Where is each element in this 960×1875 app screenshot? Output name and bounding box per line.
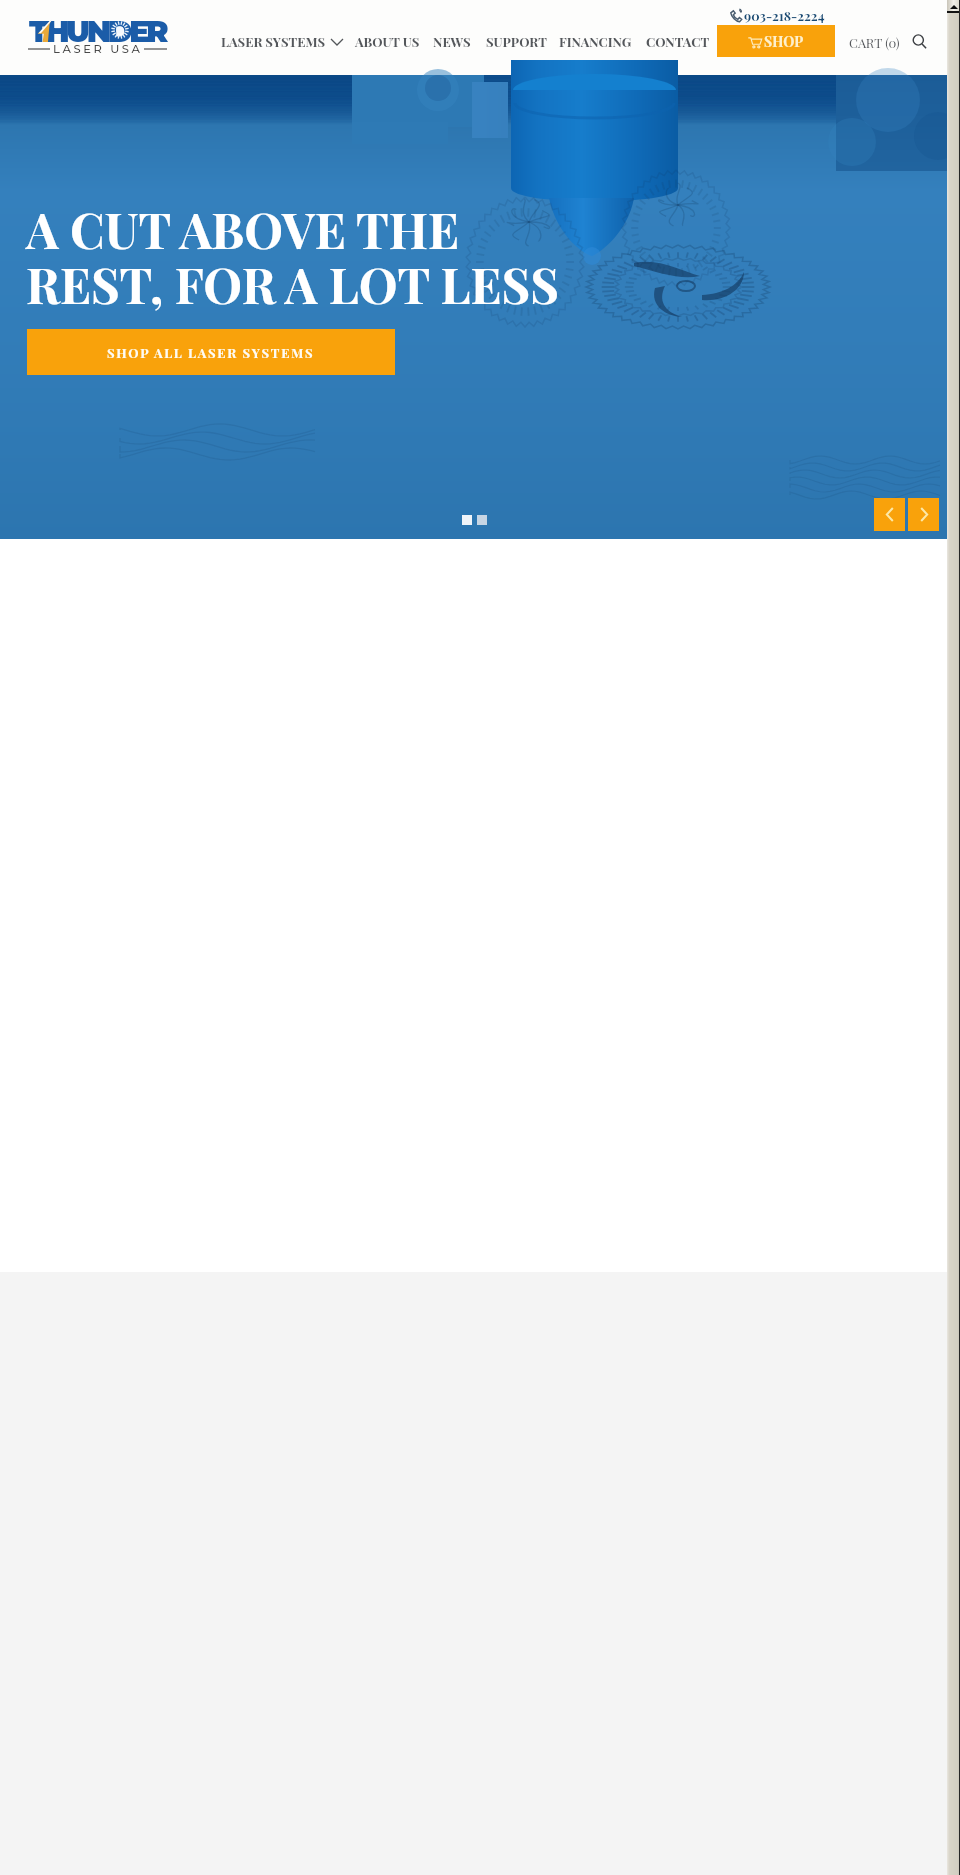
staticText: ABOUT US <box>355 33 420 50</box>
button[interactable]: ABOUT US <box>355 33 420 50</box>
button[interactable]: SHOP <box>717 25 835 57</box>
staticText: A CUT ABOVE THE REST, FOR A LOT LESS <box>26 196 559 316</box>
staticText: SHOP ALL LASER SYSTEMS <box>107 344 315 361</box>
staticText: CONTACT <box>646 33 710 50</box>
button[interactable]: 903-218-2224 <box>730 7 825 24</box>
button[interactable]: Next slide <box>908 498 939 531</box>
staticText: SUPPORT <box>486 33 548 50</box>
staticText: FINANCING <box>559 33 632 50</box>
button[interactable]: Scroll up <box>947 0 960 11</box>
button[interactable]: CONTACT <box>646 33 710 50</box>
button[interactable]: LASER SYSTEMS <box>221 33 343 50</box>
button[interactable]: FINANCING <box>559 33 632 50</box>
button[interactable]: Previous slide <box>874 498 905 531</box>
staticText: SHOP <box>764 32 804 51</box>
staticText: CART (0) <box>849 34 900 51</box>
staticText: LASER SYSTEMS <box>221 33 326 50</box>
staticText: LASER USA <box>53 42 143 56</box>
button[interactable]: SUPPORT <box>486 33 548 50</box>
staticText: NEWS <box>433 33 471 50</box>
button[interactable]: SHOP ALL LASER SYSTEMS <box>27 329 395 375</box>
button[interactable]: THUNDER <box>26 14 171 56</box>
button[interactable]: NEWS <box>433 33 471 50</box>
button[interactable]: Search <box>912 34 927 49</box>
button[interactable]: CART (0) <box>849 34 900 51</box>
staticText: 903-218-2224 <box>744 7 825 24</box>
staticText: THUNDER <box>29 13 166 50</box>
